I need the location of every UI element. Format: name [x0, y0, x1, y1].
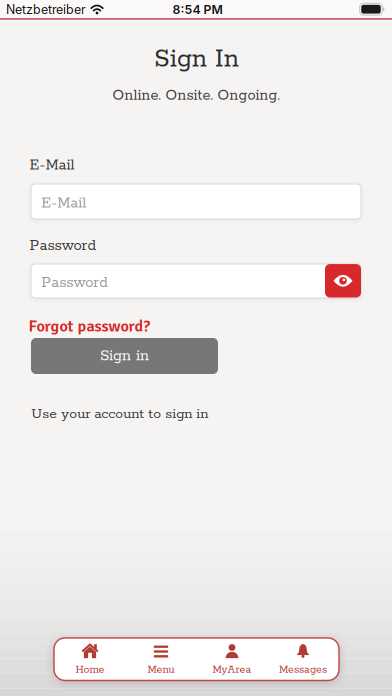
button[interactable]: Sign in	[31, 338, 218, 374]
staticText: Sign In	[154, 44, 239, 75]
staticText: Home	[75, 663, 104, 676]
button[interactable]: Show password	[325, 264, 361, 298]
staticText: Menu	[147, 663, 174, 676]
button[interactable]: Menu	[125, 638, 196, 680]
button[interactable]: Forgot password?	[28, 316, 150, 336]
staticText: Netzbetreiber	[6, 2, 86, 17]
button[interactable]: MyArea	[196, 638, 267, 680]
staticText: MyArea	[212, 663, 251, 676]
staticText: Password	[41, 273, 108, 292]
button[interactable]: Messages	[267, 638, 338, 680]
staticText: Password	[29, 236, 96, 255]
staticText: 8:54 PM	[172, 2, 222, 17]
staticText: E-Mail	[29, 156, 74, 175]
staticText: Online. Onsite. Ongoing.	[112, 87, 279, 105]
staticText: Forgot password?	[28, 316, 150, 336]
staticText: Sign in	[100, 346, 149, 365]
staticText: Messages	[279, 663, 327, 676]
staticText: Use your account to sign in	[31, 405, 208, 423]
button[interactable]: Home	[54, 638, 125, 680]
staticText: E-Mail	[41, 194, 86, 213]
